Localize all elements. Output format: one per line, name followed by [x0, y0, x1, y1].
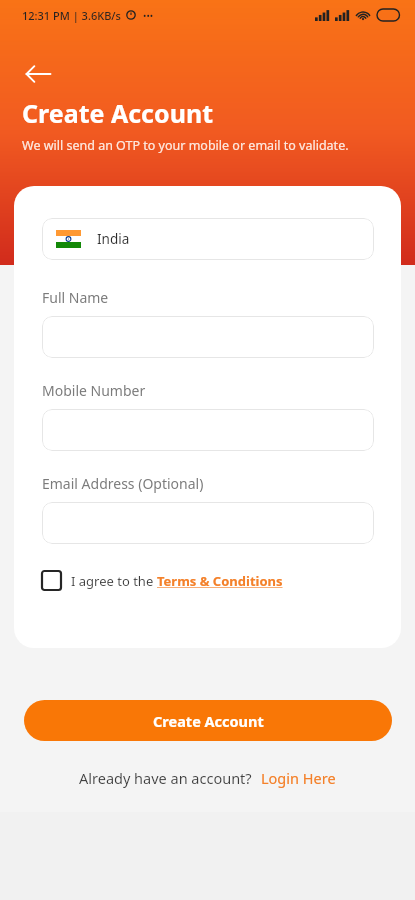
button[interactable]: Terms & Conditions	[157, 572, 283, 590]
staticText: Already have an account?	[79, 768, 252, 788]
staticText: Email Address (Optional)	[42, 474, 204, 493]
staticText: Mobile Number	[42, 381, 146, 400]
staticText: 12:31 PM | 3.6KB/s	[22, 8, 121, 23]
button[interactable]	[42, 502, 374, 544]
staticText: Login Here	[261, 768, 336, 788]
staticText: Create Account	[153, 711, 264, 731]
button[interactable]: I agree to the	[42, 569, 283, 592]
staticText: I agree to the	[71, 572, 157, 590]
button[interactable]	[42, 409, 374, 451]
staticText: Create Account	[22, 96, 213, 130]
staticText: We will send an OTP to your mobile or em…	[22, 137, 349, 154]
button[interactable]: Login Here	[261, 768, 336, 788]
button[interactable]: Create Account	[24, 700, 392, 741]
staticText: •••	[143, 9, 154, 21]
button[interactable]	[42, 316, 374, 358]
staticText: Full Name	[42, 288, 109, 307]
button[interactable]: India	[42, 218, 374, 260]
staticText: India	[97, 230, 130, 248]
button[interactable]: Back	[14, 50, 62, 98]
